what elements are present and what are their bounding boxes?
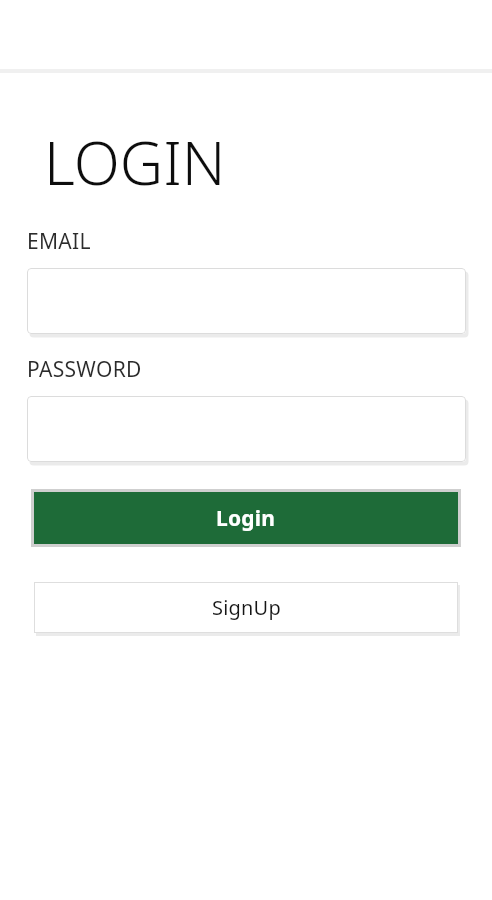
button[interactable]: Text input field <box>27 268 466 334</box>
button[interactable]: Login <box>34 492 458 544</box>
staticText: SignUp <box>212 594 281 621</box>
button[interactable]: SignUp <box>34 582 458 633</box>
staticText: LOGIN <box>44 121 226 203</box>
staticText: EMAIL <box>27 227 91 256</box>
staticText: PASSWORD <box>27 355 142 384</box>
button[interactable]: Text input field <box>27 396 466 462</box>
staticText: Login <box>216 504 276 533</box>
